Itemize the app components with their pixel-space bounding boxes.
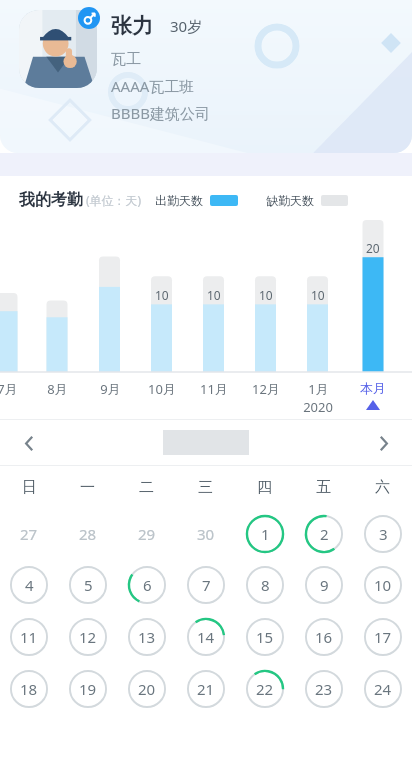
- staticText: 六: [375, 478, 390, 497]
- button[interactable]: 12: [58, 611, 117, 663]
- staticText: 7: [202, 575, 211, 595]
- staticText: 9月: [100, 380, 121, 398]
- staticText: BBBB建筑公司: [111, 103, 211, 123]
- staticText: 24: [374, 679, 392, 699]
- staticText: 22: [256, 679, 274, 699]
- staticText: 2020: [303, 398, 333, 416]
- staticText: 18: [20, 679, 38, 699]
- button[interactable]: 22: [235, 663, 294, 715]
- staticText: 10月: [148, 380, 176, 398]
- button[interactable]: 21: [176, 663, 235, 715]
- staticText: 11月: [200, 380, 228, 398]
- button[interactable]: 下个月: [362, 422, 404, 464]
- button[interactable]: 20: [117, 663, 176, 715]
- button[interactable]: 10: [353, 559, 412, 611]
- staticText: 10: [311, 287, 325, 303]
- button[interactable]: 16: [294, 611, 353, 663]
- staticText: 日: [22, 478, 37, 497]
- button[interactable]: 8: [235, 559, 294, 611]
- button[interactable]: 1: [235, 509, 294, 559]
- button[interactable]: 17: [353, 611, 412, 663]
- staticText: 1: [261, 524, 270, 544]
- staticText: 21: [197, 679, 215, 699]
- staticText: 10: [155, 287, 169, 303]
- staticText: 23: [315, 679, 333, 699]
- staticText: 8: [261, 575, 270, 595]
- staticText: AAAA瓦工班: [111, 76, 195, 96]
- staticText: 缺勤天数: [266, 193, 314, 208]
- button[interactable]: 28: [58, 509, 117, 559]
- button[interactable]: 头像: [19, 10, 97, 88]
- button[interactable]: 3: [353, 509, 412, 559]
- button[interactable]: 19: [58, 663, 117, 715]
- staticText: 1月: [308, 380, 329, 398]
- staticText: 12: [79, 627, 97, 647]
- button[interactable]: 2: [294, 509, 353, 559]
- button[interactable]: 4: [0, 559, 58, 611]
- staticText: 27: [20, 524, 38, 544]
- button[interactable]: 15: [235, 611, 294, 663]
- staticText: 出勤天数: [155, 193, 203, 208]
- button[interactable]: 上个月: [8, 422, 50, 464]
- staticText: 30岁: [170, 16, 203, 36]
- staticText: 14: [197, 627, 215, 647]
- staticText: 29: [138, 524, 156, 544]
- button[interactable]: 11: [0, 611, 58, 663]
- staticText: 2: [320, 524, 329, 544]
- staticText: 一: [80, 478, 95, 497]
- staticText: 五: [316, 478, 331, 497]
- staticText: 16: [315, 627, 333, 647]
- button[interactable]: 6: [117, 559, 176, 611]
- staticText: 我的考勤: [19, 190, 83, 210]
- staticText: 9: [320, 575, 329, 595]
- button[interactable]: 29: [117, 509, 176, 559]
- button[interactable]: 23: [294, 663, 353, 715]
- staticText: 5: [84, 575, 93, 595]
- staticText: 30: [197, 524, 215, 544]
- staticText: 10: [259, 287, 273, 303]
- staticText: 20: [366, 240, 380, 256]
- button[interactable]: 18: [0, 663, 58, 715]
- staticText: 17: [374, 627, 392, 647]
- staticText: 10: [207, 287, 221, 303]
- button[interactable]: 30: [176, 509, 235, 559]
- button[interactable]: 5: [58, 559, 117, 611]
- staticText: (单位：天): [86, 192, 142, 208]
- staticText: 张力: [111, 13, 153, 39]
- other: 性别 男: [78, 7, 100, 29]
- staticText: 13: [138, 627, 156, 647]
- button[interactable]: 7: [176, 559, 235, 611]
- staticText: 瓦工: [111, 50, 141, 69]
- staticText: 19: [79, 679, 97, 699]
- staticText: 3: [379, 524, 388, 544]
- staticText: 28: [79, 524, 97, 544]
- staticText: 12月: [252, 380, 280, 398]
- staticText: 7月: [0, 380, 18, 398]
- staticText: 三: [198, 478, 213, 497]
- button[interactable]: 24: [353, 663, 412, 715]
- button[interactable]: 14: [176, 611, 235, 663]
- staticText: 四: [257, 478, 272, 497]
- staticText: 本月: [360, 380, 386, 396]
- staticText: 二: [139, 478, 154, 497]
- staticText: 6: [143, 575, 152, 595]
- button[interactable]: 27: [0, 509, 58, 559]
- button[interactable]: 13: [117, 611, 176, 663]
- staticText: 15: [256, 627, 274, 647]
- staticText: 8月: [47, 380, 68, 398]
- staticText: 10: [374, 575, 392, 595]
- button[interactable]: 9: [294, 559, 353, 611]
- staticText: 4: [25, 575, 34, 595]
- staticText: 11: [20, 627, 38, 647]
- staticText: 20: [138, 679, 156, 699]
